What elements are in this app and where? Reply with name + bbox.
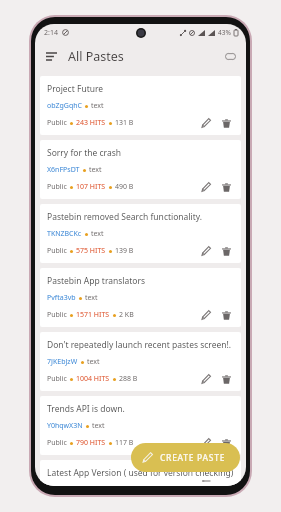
button[interactable]: Edit paste	[197, 436, 214, 450]
staticText: Pastebin App translators	[47, 275, 146, 287]
button[interactable]: Edit paste	[197, 180, 214, 194]
staticText: Trends API is down.	[47, 403, 125, 415]
staticText: All Pastes	[68, 48, 124, 65]
button[interactable]: CREATE PASTE	[131, 443, 240, 472]
staticText: 107 HITS	[76, 182, 106, 192]
staticText: text	[91, 101, 104, 111]
button[interactable]: Delete paste	[218, 116, 235, 130]
staticText: TKNZBCKc	[47, 229, 82, 239]
button[interactable]: Pastebin removed Search functionality.	[40, 204, 241, 263]
staticText: Y0hqwX3N	[47, 421, 83, 431]
staticText: 790 HITS	[76, 438, 106, 448]
staticText: Public	[47, 310, 67, 320]
button[interactable]: Delete paste	[218, 180, 235, 194]
button[interactable]: Don't repeatedly launch recent pastes sc…	[40, 332, 241, 391]
staticText: Public	[47, 246, 67, 256]
staticText: Sorry for the crash	[47, 147, 122, 159]
staticText: 1571 HITS	[76, 310, 110, 320]
staticText: Latest App Version ( used for version ch…	[47, 467, 234, 479]
staticText: Public	[47, 438, 67, 448]
staticText: obZgGqhC	[47, 101, 82, 111]
button[interactable]: Latest App Version ( used for version ch…	[40, 460, 241, 486]
staticText: 2 KB	[119, 310, 134, 320]
button[interactable]: Delete paste	[218, 436, 235, 450]
staticText: Public	[47, 182, 67, 192]
staticText: X6nFPsDT	[47, 165, 80, 175]
button[interactable]: Open navigation menu	[40, 45, 62, 67]
staticText: Public	[47, 118, 67, 128]
staticText: 7JKEbJzW	[47, 357, 78, 367]
staticText: text	[87, 357, 100, 367]
staticText: text	[85, 293, 98, 303]
staticText: 575 HITS	[76, 246, 106, 256]
staticText: 490 B	[115, 182, 134, 192]
button[interactable]: Pastebin App translators	[40, 268, 241, 327]
button[interactable]: Edit paste	[197, 372, 214, 386]
staticText: 243 HITS	[76, 118, 106, 128]
button[interactable]: Delete paste	[218, 244, 235, 258]
button[interactable]: Open link	[219, 45, 241, 67]
staticText: 131 B	[115, 118, 134, 128]
staticText: text	[89, 165, 102, 175]
staticText: 117 B	[115, 438, 134, 448]
button[interactable]: Edit paste	[197, 116, 214, 130]
button[interactable]: Trends API is down.	[40, 396, 241, 455]
staticText: Pvfta3vb	[47, 293, 76, 303]
staticText: 288 B	[119, 374, 138, 384]
button[interactable]: Sorry for the crash	[40, 140, 241, 199]
button[interactable]: Delete paste	[218, 308, 235, 322]
staticText: 43%	[218, 28, 231, 37]
staticText: Don't repeatedly launch recent pastes sc…	[47, 339, 232, 351]
staticText: Public	[47, 374, 67, 384]
staticText: text	[92, 421, 105, 431]
staticText: Project Future	[47, 83, 104, 95]
staticText: 1004 HITS	[76, 374, 110, 384]
button[interactable]: Edit paste	[197, 308, 214, 322]
staticText: 139 B	[115, 246, 134, 256]
staticText: text	[91, 229, 104, 239]
staticText: 2:14	[44, 28, 58, 38]
button[interactable]: Edit paste	[197, 244, 214, 258]
staticText: CREATE PASTE	[160, 452, 226, 464]
staticText: Pastebin removed Search functionality.	[47, 211, 203, 223]
button[interactable]: Project Future	[40, 76, 241, 135]
button[interactable]: Delete paste	[218, 372, 235, 386]
